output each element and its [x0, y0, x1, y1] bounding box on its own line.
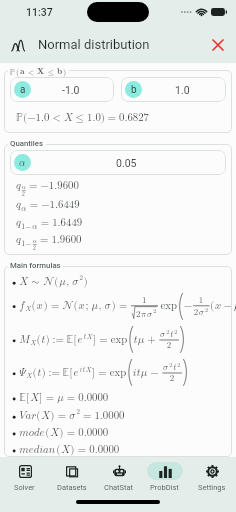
button[interactable]: Solver: [2, 462, 47, 492]
button[interactable]: ProbDist: [142, 462, 187, 492]
staticText: b: [131, 84, 137, 96]
button[interactable]: 0.05: [10, 150, 226, 175]
staticText: ProbDist: [150, 483, 179, 492]
button[interactable]: Settings: [189, 462, 234, 492]
staticText: -1.0: [62, 84, 80, 96]
staticText: Quantiles: [10, 139, 44, 148]
staticText: Datasets: [57, 483, 87, 492]
button[interactable]: Distribution type: [7, 34, 29, 56]
staticText: a: [20, 84, 26, 96]
button[interactable]: Datasets: [49, 462, 94, 492]
staticText: Settings: [198, 483, 226, 492]
button[interactable]: b: [121, 77, 226, 102]
staticText: Normal distribution: [38, 37, 150, 52]
staticText: Main formulas: [10, 261, 61, 270]
button[interactable]: Close: [206, 33, 230, 57]
button[interactable]: ChatStat: [96, 462, 141, 492]
staticText: 1.0: [175, 84, 190, 96]
staticText: 11:37: [26, 6, 53, 18]
staticText: 0.05: [116, 157, 137, 169]
staticText: ChatStat: [104, 483, 133, 492]
button[interactable]: a: [10, 77, 114, 102]
staticText: Solver: [14, 483, 35, 492]
